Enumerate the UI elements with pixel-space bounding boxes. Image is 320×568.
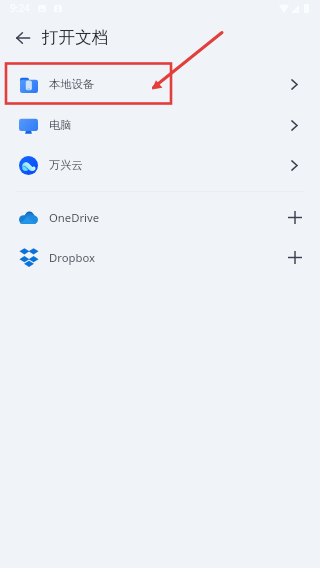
staticText: 9:24 [10, 1, 30, 15]
staticText: 电脑 [49, 118, 72, 132]
staticText: OneDrive [49, 210, 100, 225]
button[interactable]: 本地设备 [0, 64, 320, 104]
staticText: 本地设备 [49, 77, 95, 91]
button[interactable]: 万兴云 [0, 145, 320, 185]
staticText: 万兴云 [49, 158, 83, 172]
button[interactable]: OneDrive [0, 197, 320, 237]
staticText: 打开文档 [42, 27, 109, 48]
button[interactable]: 电脑 [0, 105, 320, 145]
staticText: Dropbox [49, 250, 96, 265]
button[interactable]: Back [6, 21, 39, 54]
button[interactable]: Dropbox [0, 237, 320, 277]
